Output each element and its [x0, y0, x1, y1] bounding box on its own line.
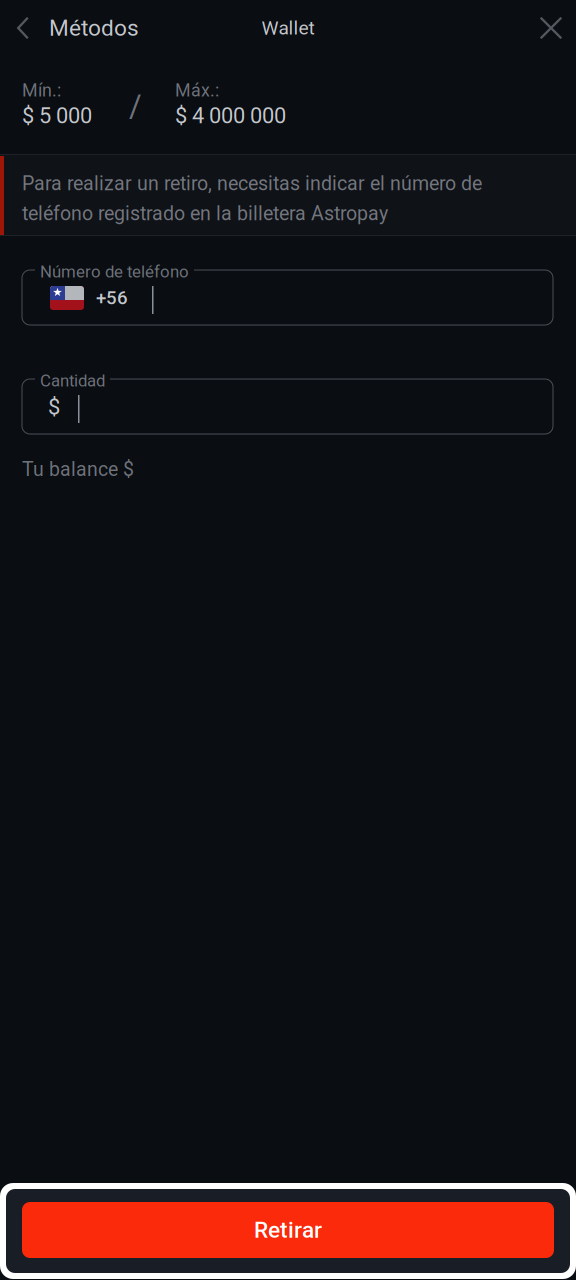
staticText: Para realizar un retiro, necesitas indic…	[22, 172, 482, 195]
staticText: Retirar	[254, 1217, 322, 1243]
staticText: Máx.:	[175, 80, 219, 101]
staticText: $	[48, 394, 60, 420]
button[interactable]: Close	[528, 3, 574, 53]
staticText: $ 4 000 000	[175, 103, 286, 129]
button[interactable]: Back	[0, 3, 46, 53]
staticText: Número de teléfono	[40, 262, 189, 282]
staticText: /	[129, 88, 142, 124]
button[interactable]: Métodos	[49, 3, 139, 53]
staticText: +56	[96, 287, 128, 309]
button[interactable]: Retirar	[22, 1202, 554, 1258]
staticText: Métodos	[49, 15, 139, 41]
staticText: teléfono registrado en la billetera Astr…	[22, 202, 388, 225]
staticText: $ 5 000	[22, 103, 92, 129]
staticText: Mín.:	[22, 80, 61, 101]
staticText: Wallet	[261, 17, 314, 39]
staticText: Cantidad	[40, 371, 105, 391]
staticText: Tu balance $	[22, 458, 134, 481]
